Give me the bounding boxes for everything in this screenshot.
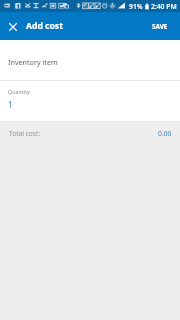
staticText: Total cost: <box>9 129 41 138</box>
button[interactable]: Quantity <box>0 81 180 121</box>
staticText: 0.00 <box>158 129 172 138</box>
staticText: Quantity <box>8 88 30 95</box>
staticText: 91% <box>129 2 143 11</box>
button[interactable]: Close <box>0 14 24 38</box>
staticText: Add cost <box>26 20 63 32</box>
button[interactable]: SAVE <box>142 15 180 38</box>
staticText: 2:40 PM <box>151 2 177 11</box>
staticText: Inventory item <box>8 57 58 67</box>
button[interactable]: Inventory item <box>0 40 180 80</box>
staticText: SAVE <box>152 22 168 31</box>
staticText: 1 <box>8 99 13 111</box>
